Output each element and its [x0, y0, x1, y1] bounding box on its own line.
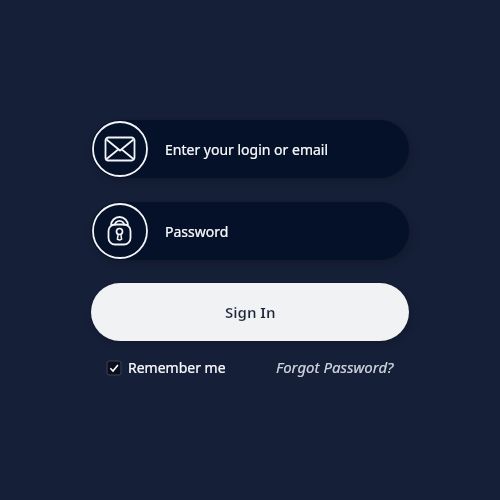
staticText: Forgot Password?: [276, 357, 394, 377]
button[interactable]: Sign In: [91, 283, 409, 341]
button[interactable]: Password: [91, 202, 409, 260]
button[interactable]: Enter your login or email: [91, 120, 409, 178]
button[interactable]: Remember me: [107, 358, 226, 377]
button[interactable]: Forgot Password?: [276, 357, 394, 377]
staticText: Sign In: [225, 302, 276, 322]
staticText: Enter your login or email: [165, 140, 329, 159]
staticText: Remember me: [128, 358, 226, 377]
staticText: Password: [165, 222, 229, 241]
